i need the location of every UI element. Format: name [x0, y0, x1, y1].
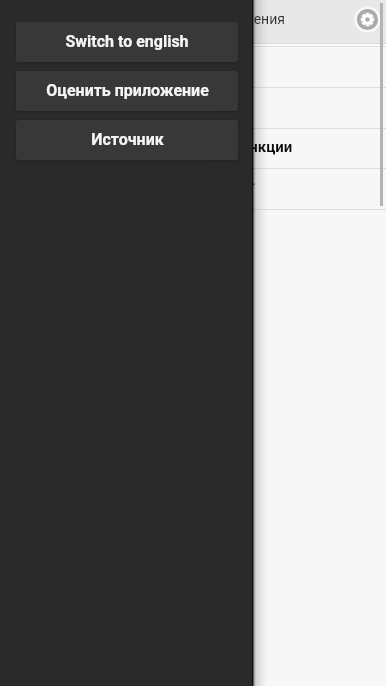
- button[interactable]: Оценить приложение: [16, 71, 238, 111]
- button[interactable]: Switch to english: [16, 22, 238, 62]
- button[interactable]: Новые функции: [0, 129, 386, 168]
- staticText: Источник: [91, 130, 164, 149]
- staticText: История обновлений.: [114, 172, 256, 188]
- button[interactable]: Источник: [16, 120, 238, 160]
- staticText: Тема оформления: [16, 100, 137, 116]
- staticText: Новые функции: [179, 138, 293, 156]
- staticText: Switch to english: [65, 32, 189, 51]
- staticText: Язык интерфейса: [16, 59, 133, 75]
- staticText: Настройки отображения: [123, 11, 285, 27]
- staticText: Оценить приложение: [46, 81, 209, 100]
- button[interactable]: Settings: [354, 6, 381, 33]
- button[interactable]: История обновлений.: [0, 169, 386, 209]
- button[interactable]: Тема оформления: [0, 88, 386, 128]
- button[interactable]: Язык интерфейса: [0, 47, 386, 87]
